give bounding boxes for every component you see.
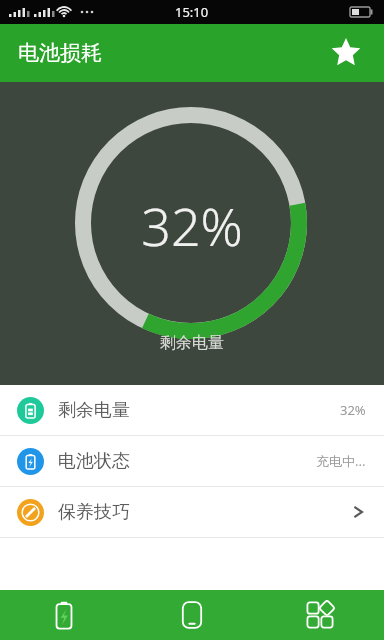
button[interactable]: 剩余电量 bbox=[0, 385, 384, 435]
staticText: 剩余电量 bbox=[58, 399, 130, 422]
staticText: 32% bbox=[141, 190, 243, 261]
staticText: 保养技巧 bbox=[58, 501, 130, 524]
staticText: 充电中... bbox=[316, 452, 366, 470]
staticText: 15:10 bbox=[175, 3, 209, 21]
button[interactable]: Device bbox=[128, 590, 256, 640]
button[interactable]: 电池状态 bbox=[0, 436, 384, 486]
staticText: 电池损耗 bbox=[18, 40, 102, 66]
staticText: 32% bbox=[340, 401, 366, 419]
button[interactable]: 保养技巧 bbox=[0, 487, 384, 537]
staticText: 剩余电量 bbox=[160, 333, 224, 353]
button[interactable]: Apps bbox=[256, 590, 384, 640]
button[interactable]: Battery bbox=[0, 590, 128, 640]
button[interactable]: Favorite bbox=[326, 33, 366, 73]
staticText: 电池状态 bbox=[58, 450, 130, 473]
